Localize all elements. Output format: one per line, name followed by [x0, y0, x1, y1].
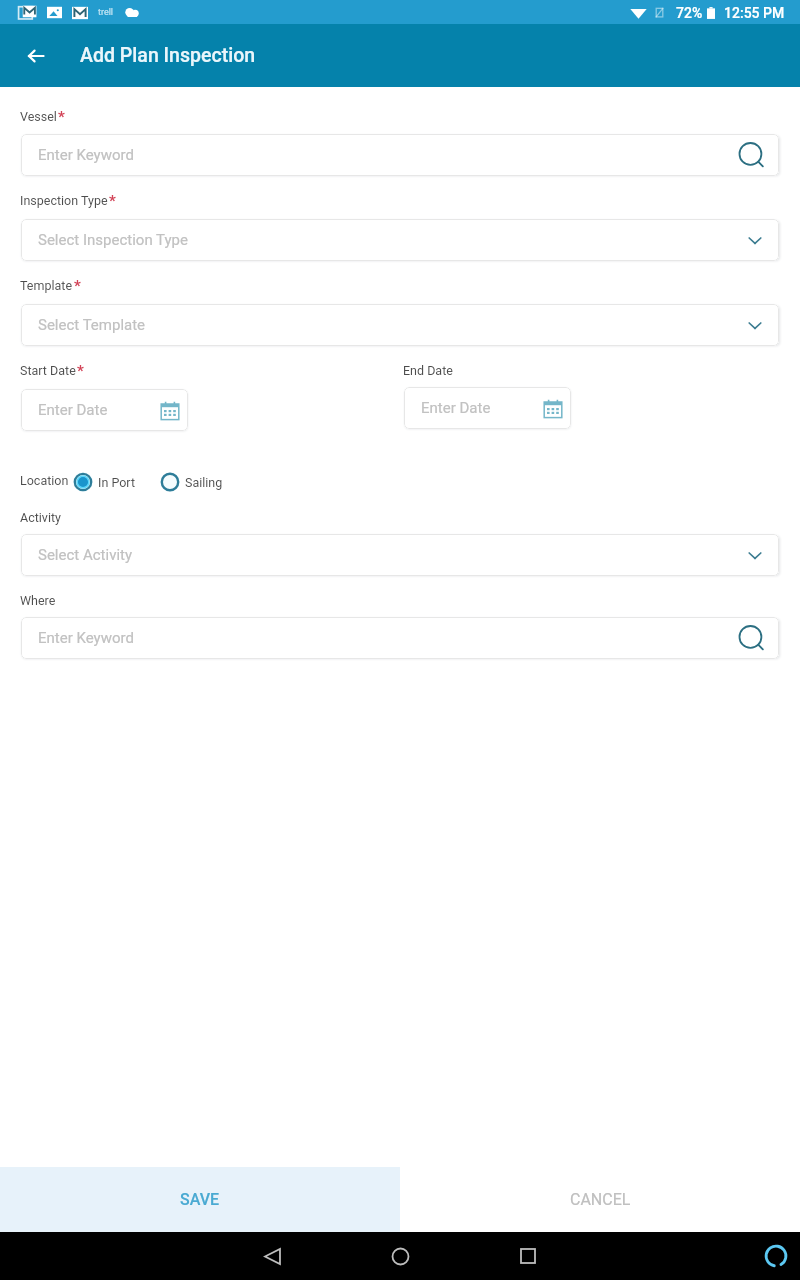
button[interactable]: Open dropdown	[745, 545, 765, 565]
button[interactable]: Pick date	[160, 401, 180, 420]
staticText: Sailing	[185, 475, 223, 490]
button[interactable]: Open dropdown	[745, 315, 765, 335]
button[interactable]: Enter Keyword	[21, 617, 779, 659]
staticText: 72%	[676, 5, 703, 21]
staticText: *	[74, 277, 81, 295]
button[interactable]: Search	[735, 623, 765, 653]
button[interactable]: Assistant	[760, 1240, 792, 1272]
button[interactable]: In Port	[73, 471, 135, 493]
staticText: Enter Date	[38, 401, 108, 419]
button[interactable]: Back	[252, 1236, 292, 1276]
staticText: trell	[98, 7, 114, 18]
button[interactable]: Sailing	[160, 471, 223, 493]
button[interactable]: CANCEL	[400, 1167, 800, 1232]
button[interactable]: Select Inspection Type	[21, 219, 779, 261]
staticText: SAVE	[180, 1190, 220, 1209]
staticText: *	[58, 108, 65, 126]
staticText: Start Date	[20, 363, 76, 378]
staticText: CANCEL	[570, 1190, 631, 1209]
staticText: Location	[20, 473, 69, 488]
button[interactable]: Pick date	[543, 399, 563, 418]
staticText: In Port	[98, 475, 135, 490]
button[interactable]: Select Template	[21, 304, 779, 346]
button[interactable]: Recent apps	[508, 1236, 548, 1276]
staticText: Select Activity	[38, 546, 133, 564]
button[interactable]: Enter Date	[404, 387, 571, 429]
staticText: Activity	[20, 510, 61, 525]
staticText: Enter Keyword	[38, 146, 134, 164]
button[interactable]: Open dropdown	[745, 230, 765, 250]
staticText: Enter Date	[421, 399, 491, 417]
staticText: Where	[20, 593, 56, 608]
staticText: 12:55 PM	[724, 5, 785, 21]
staticText: *	[77, 362, 84, 380]
staticText: Template	[20, 278, 73, 293]
staticText: Select Template	[38, 316, 146, 334]
staticText: *	[109, 192, 116, 210]
staticText: Add Plan Inspection	[80, 44, 256, 67]
button[interactable]: Enter Keyword	[21, 134, 779, 176]
staticText: Select Inspection Type	[38, 231, 188, 249]
button[interactable]: Enter Date	[21, 389, 188, 431]
button[interactable]: Search	[735, 140, 765, 170]
staticText: Inspection Type	[20, 193, 108, 208]
button[interactable]: Home	[380, 1236, 420, 1276]
staticText: End Date	[403, 363, 453, 378]
button[interactable]: Select Activity	[21, 534, 779, 576]
button[interactable]: SAVE	[0, 1167, 400, 1232]
staticText: Enter Keyword	[38, 629, 134, 647]
staticText: Vessel	[20, 109, 57, 124]
button[interactable]: Back	[16, 36, 56, 76]
